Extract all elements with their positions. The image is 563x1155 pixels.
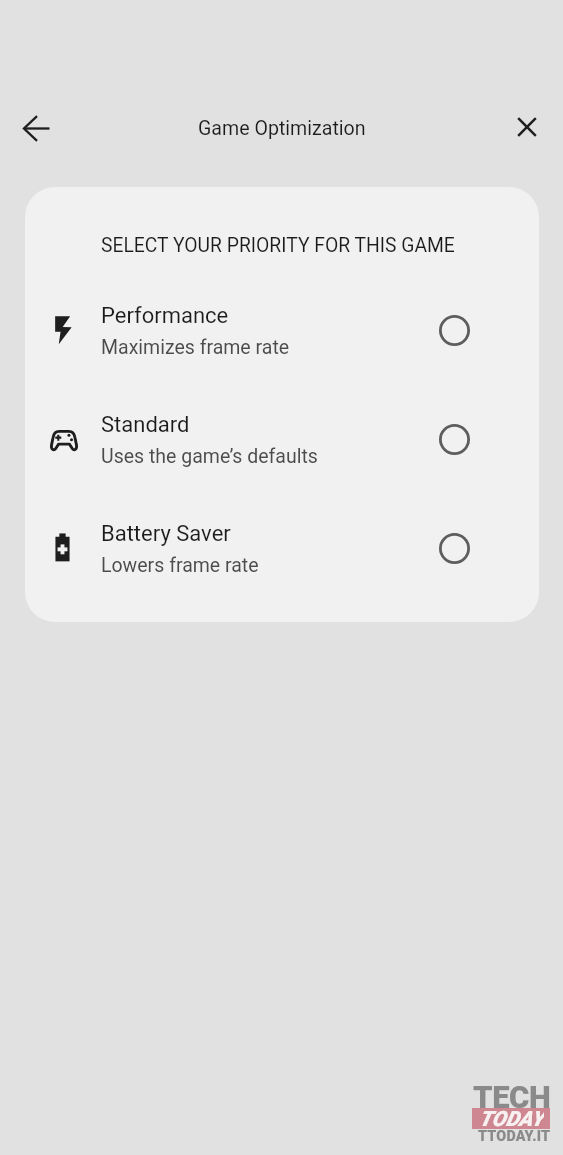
button[interactable]: Back [10, 102, 62, 154]
staticText: TECH [473, 1079, 551, 1115]
staticText: SELECT YOUR PRIORITY FOR THIS GAME [101, 234, 455, 257]
staticText: TODAY [479, 1107, 544, 1128]
staticText: Maximizes frame rate [101, 336, 290, 359]
button[interactable]: Select Standard [430, 415, 479, 464]
staticText: TTODAY.IT [478, 1128, 551, 1145]
staticText: Standard [101, 412, 190, 438]
staticText: Game Optimization [198, 117, 366, 140]
button[interactable]: Battery Saver [25, 510, 539, 586]
staticText: Uses the game’s defaults [101, 445, 318, 468]
button[interactable]: Close [501, 102, 553, 154]
button[interactable]: Select Battery Saver [430, 524, 479, 573]
staticText: Lowers frame rate [101, 554, 259, 577]
button[interactable]: Performance [25, 292, 539, 368]
staticText: Battery Saver [101, 521, 231, 547]
button[interactable]: Standard [25, 401, 539, 477]
button[interactable]: Select Performance [430, 306, 479, 355]
staticText: Performance [101, 303, 229, 329]
